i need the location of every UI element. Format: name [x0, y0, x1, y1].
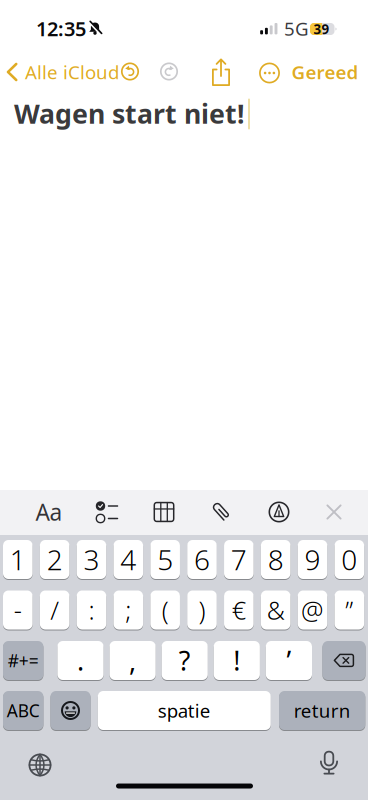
button[interactable]: spatie — [98, 691, 271, 730]
staticText: ! — [233, 643, 240, 678]
staticText: Aa — [35, 497, 62, 527]
staticText: 2 — [47, 541, 63, 578]
button[interactable]: ! — [214, 641, 260, 680]
button[interactable]: 4 — [113, 540, 143, 579]
button[interactable]: #+= — [3, 641, 43, 680]
staticText: ’ — [286, 643, 291, 678]
staticText: 5 — [157, 541, 173, 578]
button[interactable]: € — [224, 590, 254, 629]
staticText: ABC — [7, 699, 40, 722]
button[interactable]: Emoji — [50, 691, 90, 730]
button[interactable]: ’ — [266, 641, 312, 680]
staticText: #+= — [8, 649, 39, 672]
button[interactable]: Table — [153, 502, 174, 522]
staticText: ( — [162, 593, 169, 627]
staticText: Gereed — [291, 60, 358, 84]
staticText: ” — [345, 593, 353, 627]
staticText: @ — [301, 593, 324, 627]
staticText: , — [129, 643, 136, 678]
button[interactable]: Attach — [214, 501, 228, 523]
button[interactable]: ; — [113, 590, 143, 629]
button[interactable]: 1 — [3, 540, 33, 579]
staticText: ) — [198, 593, 205, 627]
button[interactable]: . — [57, 641, 104, 680]
staticText: 4 — [120, 541, 136, 578]
button[interactable]: ) — [187, 590, 217, 629]
staticText: 5G — [284, 16, 309, 41]
button[interactable]: 8 — [261, 540, 290, 579]
button[interactable]: - — [3, 590, 33, 629]
button[interactable]: 2 — [40, 540, 69, 579]
staticText: € — [232, 593, 246, 627]
staticText: . — [77, 643, 84, 678]
button[interactable]: Delete — [322, 641, 365, 680]
button[interactable]: 9 — [298, 540, 327, 579]
button[interactable]: Checklist — [95, 501, 118, 523]
button[interactable]: More — [259, 62, 280, 83]
button[interactable]: & — [261, 590, 290, 629]
button[interactable]: Undo — [120, 61, 140, 81]
button[interactable]: Dictation — [320, 750, 338, 775]
staticText: Wagen start niet! — [14, 96, 245, 131]
button[interactable]: 0 — [335, 540, 364, 579]
button[interactable]: ” — [335, 590, 364, 629]
button[interactable]: 3 — [77, 540, 106, 579]
button[interactable]: Format — [32, 497, 66, 527]
staticText: ; — [125, 593, 131, 627]
button[interactable]: @ — [298, 590, 327, 629]
staticText: Alle iCloud — [25, 60, 119, 84]
button[interactable]: Gereed — [287, 60, 363, 84]
button[interactable]: 7 — [224, 540, 254, 579]
button[interactable]: Next keyboard — [28, 753, 52, 777]
staticText: 9 — [304, 541, 320, 578]
button[interactable]: Back — Alle iCloud — [1, 62, 111, 81]
button[interactable]: ABC — [3, 691, 43, 730]
button[interactable]: return — [279, 691, 365, 730]
staticText: 39 — [313, 20, 329, 38]
button[interactable]: , — [109, 641, 156, 680]
button[interactable]: Share — [212, 58, 230, 86]
staticText: return — [294, 698, 351, 723]
staticText: 12:35 — [36, 15, 86, 42]
button[interactable]: ? — [162, 641, 208, 680]
button[interactable]: Redo — [159, 61, 179, 81]
staticText: 3 — [83, 541, 99, 578]
staticText: : — [88, 593, 94, 627]
button[interactable]: 5 — [150, 540, 180, 579]
staticText: spatie — [158, 698, 211, 723]
button[interactable]: 6 — [187, 540, 217, 579]
staticText: 1 — [10, 541, 26, 578]
button[interactable]: ( — [150, 590, 180, 629]
staticText: ? — [179, 643, 191, 678]
staticText: 0 — [341, 541, 357, 578]
staticText: - — [14, 593, 22, 627]
staticText: 6 — [194, 541, 210, 578]
staticText: & — [267, 593, 285, 627]
button[interactable]: / — [40, 590, 69, 629]
staticText: / — [50, 593, 59, 627]
button[interactable]: : — [77, 590, 106, 629]
button[interactable]: Markup — [268, 501, 289, 522]
staticText: 7 — [231, 541, 247, 578]
button[interactable]: Dismiss keyboard toolbar — [326, 504, 341, 519]
staticText: 8 — [268, 541, 284, 578]
